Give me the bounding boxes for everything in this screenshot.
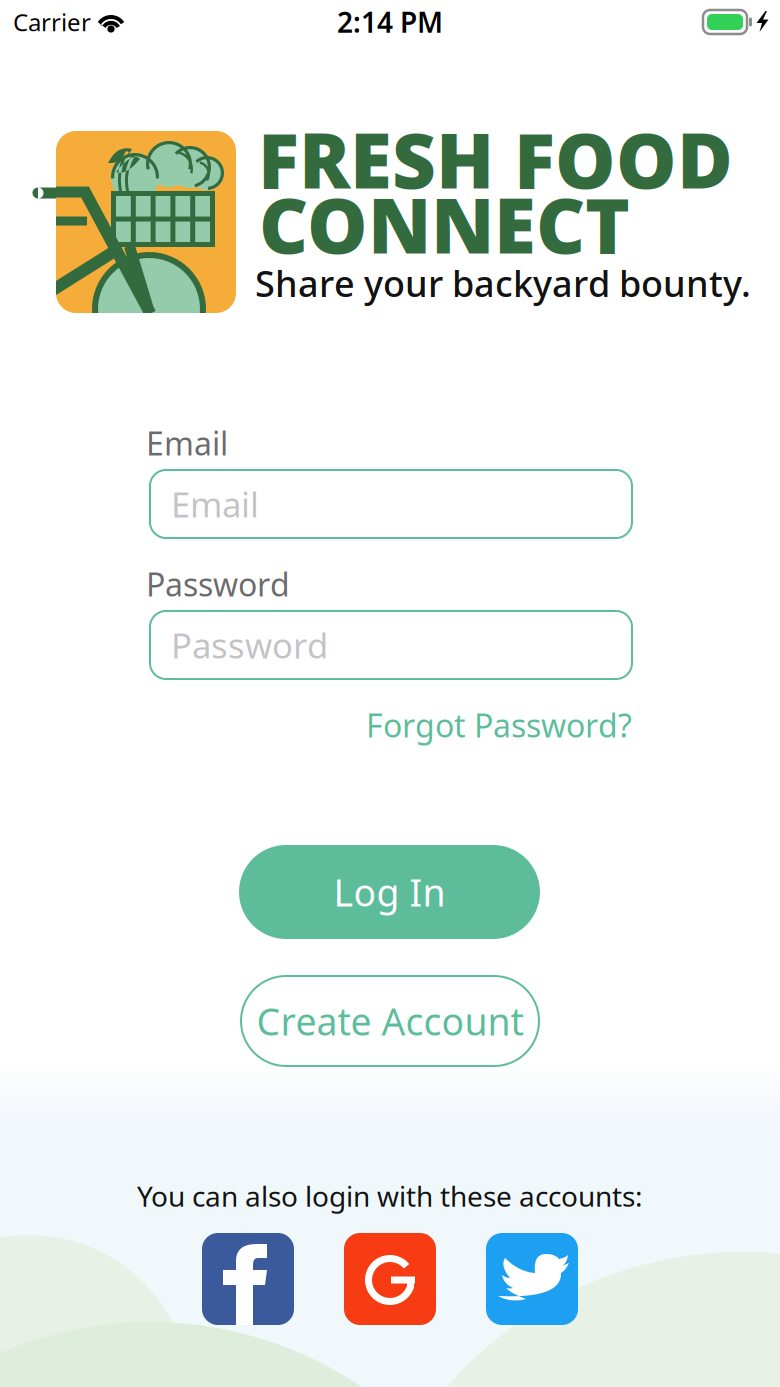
staticText: Carrier: [13, 6, 91, 38]
button[interactable]: Log in with Facebook: [202, 1233, 294, 1325]
staticText: You can also login with these accounts:: [137, 1177, 643, 1215]
staticText: Password: [171, 622, 328, 668]
button[interactable]: Forgot Password?: [150, 706, 632, 744]
staticText: FRESH FOOD: [258, 108, 733, 209]
staticText: CONNECT: [259, 173, 630, 274]
staticText: Share your backyard bounty.: [255, 259, 751, 307]
staticText: 2:14 PM: [337, 3, 443, 41]
staticText: Password: [146, 563, 290, 605]
staticText: Create Account: [256, 996, 523, 1046]
button[interactable]: Create Account: [241, 976, 539, 1066]
staticText: Email: [171, 481, 259, 527]
staticText: Forgot Password?: [366, 704, 632, 746]
staticText: Email: [146, 422, 228, 464]
button[interactable]: Log in with Twitter: [486, 1233, 578, 1325]
button[interactable]: Email: [150, 470, 632, 538]
button[interactable]: Log in with Google: [344, 1233, 436, 1325]
button[interactable]: Log In: [239, 845, 540, 939]
button[interactable]: Password: [150, 611, 632, 679]
staticText: Log In: [333, 867, 445, 917]
